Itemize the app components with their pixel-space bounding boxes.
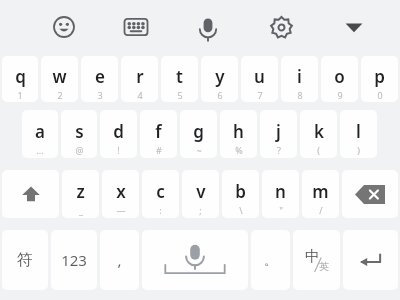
staticText: v [196, 180, 206, 203]
staticText: ? [277, 144, 281, 156]
button[interactable]: Backspace [342, 170, 398, 218]
staticText: " [279, 204, 283, 216]
button[interactable]: o [321, 56, 358, 102]
button[interactable]: h [220, 110, 257, 158]
staticText: b [235, 180, 246, 203]
staticText: w [52, 65, 67, 88]
staticText: f [155, 120, 162, 143]
staticText: 8 [297, 89, 303, 101]
button[interactable]: n [262, 170, 299, 218]
staticText: 。 [264, 252, 277, 268]
staticText: @ [75, 144, 84, 156]
staticText: s [75, 120, 84, 143]
staticText: g [193, 120, 204, 143]
staticText: 7 [257, 89, 263, 101]
staticText: ! [117, 144, 120, 156]
button[interactable]: k [300, 110, 337, 158]
button[interactable]: j [260, 110, 297, 158]
staticText: k [314, 120, 324, 143]
button[interactable]: Shift [2, 170, 59, 218]
staticText: ... [36, 144, 44, 156]
staticText: d [113, 120, 124, 143]
staticText: o [334, 65, 345, 88]
button[interactable]: 123 [51, 230, 97, 290]
button[interactable]: c [142, 170, 179, 218]
staticText: 9 [337, 89, 343, 101]
staticText: 中 [305, 247, 320, 266]
staticText: j [276, 120, 281, 143]
button[interactable]: m [302, 170, 339, 218]
staticText: / [319, 204, 323, 216]
button[interactable]: 。 [251, 230, 290, 290]
button[interactable]: t [161, 56, 198, 102]
button[interactable]: z [62, 170, 99, 218]
staticText: c [156, 180, 165, 203]
button[interactable]: Keyboard layout [116, 7, 156, 47]
staticText: 6 [217, 89, 223, 101]
button[interactable]: Switch Chinese English [293, 230, 340, 290]
staticText: i [297, 65, 302, 88]
staticText: p [374, 65, 385, 88]
staticText: h [233, 120, 244, 143]
button[interactable]: i [281, 56, 318, 102]
staticText: z [76, 180, 85, 203]
staticText: q [15, 65, 26, 88]
staticText: 4 [137, 89, 143, 101]
staticText: e [95, 65, 105, 88]
button[interactable]: l [340, 110, 377, 158]
button[interactable]: g [180, 110, 217, 158]
button[interactable]: 符 [2, 230, 48, 290]
staticText: ~ [196, 144, 202, 156]
button[interactable]: x [102, 170, 139, 218]
button[interactable]: w [41, 56, 78, 102]
button[interactable]: e [81, 56, 118, 102]
button[interactable]: a [22, 110, 58, 158]
button[interactable]: Voice input [188, 7, 228, 47]
button[interactable]: Settings [261, 7, 301, 47]
button[interactable]: v [182, 170, 219, 218]
staticText: , [117, 250, 122, 270]
staticText: 123 [61, 250, 87, 270]
staticText: 3 [97, 89, 103, 101]
staticText: r [136, 65, 144, 88]
button[interactable]: Hide keyboard [334, 7, 374, 47]
button[interactable]: d [100, 110, 137, 158]
button[interactable]: q [2, 56, 38, 102]
staticText: l [356, 120, 361, 143]
button[interactable]: b [222, 170, 259, 218]
staticText: 1 [17, 89, 23, 101]
button[interactable]: r [121, 56, 158, 102]
staticText: t [176, 65, 183, 88]
staticText: 0 [377, 89, 383, 101]
staticText: x [116, 180, 126, 203]
staticText: 2 [57, 89, 63, 101]
button[interactable]: s [61, 110, 97, 158]
button[interactable]: y [201, 56, 238, 102]
button[interactable]: Enter [343, 230, 398, 290]
button[interactable]: f [140, 110, 177, 158]
staticText: ( [317, 144, 320, 156]
staticText: n [275, 180, 286, 203]
staticText: u [254, 65, 265, 88]
staticText: : [159, 204, 162, 216]
staticText: 5 [177, 89, 183, 101]
button[interactable]: p [361, 56, 398, 102]
staticText: — [116, 204, 126, 216]
staticText: m [312, 180, 329, 203]
staticText: a [35, 120, 45, 143]
staticText: y [215, 65, 225, 88]
staticText: ) [357, 144, 360, 156]
staticText: % [235, 144, 243, 156]
button[interactable]: , [100, 230, 139, 290]
staticText: # [156, 144, 162, 156]
staticText: 符 [17, 250, 33, 270]
staticText: 英 [319, 260, 329, 273]
staticText: ; [199, 204, 202, 216]
button[interactable]: Emoji [44, 7, 84, 47]
staticText: \ [239, 204, 243, 216]
button[interactable]: u [241, 56, 278, 102]
button[interactable]: Space [142, 230, 248, 290]
staticText: _ [79, 204, 83, 216]
